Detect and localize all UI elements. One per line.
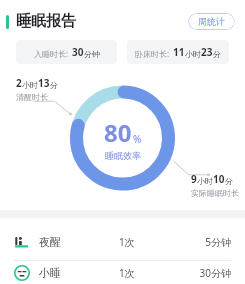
other: Nap [14,265,30,281]
staticText: 入睡时长: [34,48,69,59]
staticText: 5分钟 [179,235,231,249]
staticText: 睡眠报告 [16,12,76,31]
staticText: 80 [104,116,132,149]
staticText: 夜醒 [39,235,61,249]
staticText: 30分钟 [179,266,231,280]
staticText: 睡眠效率 [105,150,141,161]
staticText: 周统计 [198,16,225,27]
staticText: 分 [225,176,233,186]
staticText: 清醒时长 [16,92,48,102]
staticText: % [133,132,142,146]
staticText: 1次 [119,235,179,249]
staticText: 2 [16,76,22,90]
staticText: 分钟 [84,49,100,59]
button[interactable]: 卧床时长: [127,40,229,64]
staticText: 实际睡眠时长 [191,188,239,198]
staticText: 分 [50,80,58,90]
staticText: 30 [72,45,84,59]
button[interactable]: Night wake [0,224,245,260]
staticText: 小睡 [39,266,61,280]
staticText: 10 [213,172,225,186]
staticText: 小时 [22,80,38,90]
staticText: 小时 [185,49,201,59]
button[interactable]: Nap [0,261,245,284]
staticText: 卧床时长: [135,48,170,59]
button[interactable]: 入睡时长: [16,40,117,64]
staticText: 13 [38,76,50,90]
staticText: 小时 [197,176,213,186]
staticText: 11 [173,45,185,59]
staticText: 1次 [119,266,179,280]
staticText: 9 [191,172,197,186]
button[interactable]: 周统计 [188,13,235,30]
staticText: 分 [213,49,221,59]
other: Night wake [14,234,30,250]
staticText: 23 [201,45,213,59]
